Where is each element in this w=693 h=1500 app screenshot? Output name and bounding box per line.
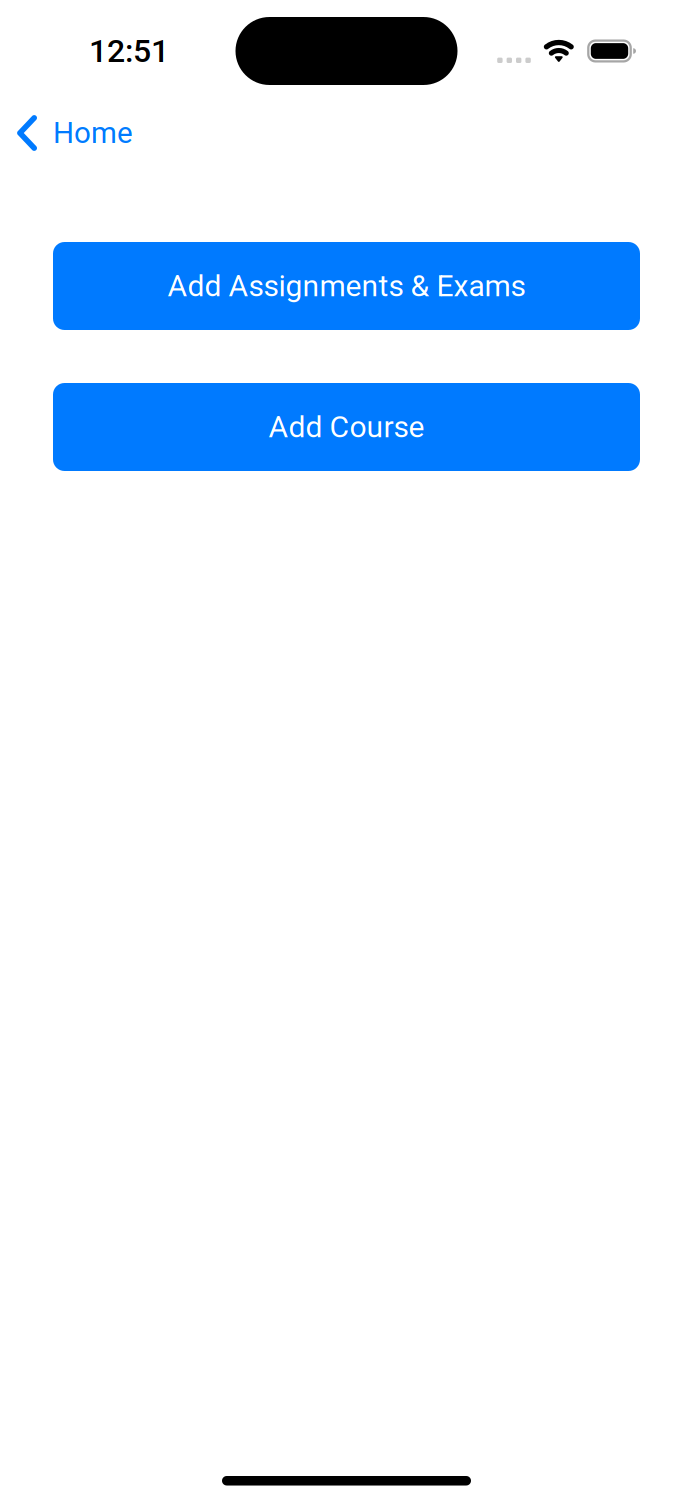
button[interactable]: Home bbox=[0, 111, 147, 155]
staticText: Add Course bbox=[268, 409, 424, 445]
staticText: Home bbox=[53, 116, 133, 150]
button[interactable]: Add Assignments & Exams bbox=[53, 242, 640, 330]
staticText: Add Assignments & Exams bbox=[167, 268, 525, 304]
staticText: 12:51 bbox=[89, 32, 169, 70]
button[interactable]: Add Course bbox=[53, 383, 640, 471]
